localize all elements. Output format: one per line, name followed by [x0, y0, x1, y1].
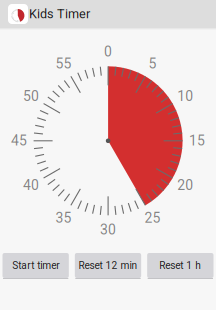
staticText: 20 [177, 177, 193, 193]
staticText: 55 [56, 55, 72, 72]
staticText: 15 [189, 133, 205, 149]
staticText: 35 [56, 210, 72, 226]
staticText: Reset 1 h [159, 260, 201, 271]
staticText: 10 [177, 88, 193, 104]
staticText: Reset 12 min [78, 260, 137, 271]
staticText: 5 [149, 55, 157, 72]
staticText: 50 [23, 88, 39, 104]
button[interactable]: Start timer [2, 253, 69, 279]
staticText: Start timer [12, 260, 59, 271]
staticText: 25 [145, 210, 161, 226]
staticText: 30 [100, 222, 116, 238]
button[interactable]: Reset 12 min [75, 253, 141, 279]
staticText: 0 [104, 44, 112, 60]
staticText: 40 [23, 177, 39, 193]
staticText: 45 [11, 133, 27, 149]
button[interactable]: Reset 1 h [147, 253, 213, 279]
staticText: Kids Timer [29, 7, 90, 21]
